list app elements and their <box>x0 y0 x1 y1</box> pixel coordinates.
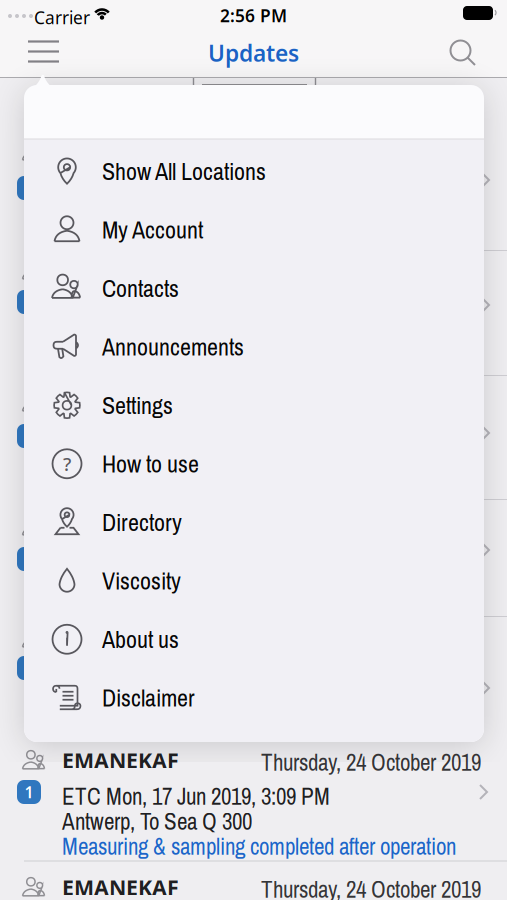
button[interactable]: Directory <box>24 493 484 551</box>
staticText: 2:56 PM <box>220 4 287 27</box>
staticText: Carrier <box>34 6 90 29</box>
staticText: EMANEKAF <box>62 873 179 900</box>
staticText: Contacts <box>102 272 179 304</box>
button[interactable]: EMANEKAF <box>0 745 507 862</box>
button[interactable]: Viscosity <box>24 551 484 610</box>
staticText: Disclaimer <box>102 682 195 714</box>
button[interactable]: About us <box>24 610 484 668</box>
staticText: Thursday, 24 October 2019 <box>261 874 481 900</box>
staticText: EMANEKAF <box>62 746 179 774</box>
staticText: My Account <box>102 214 203 246</box>
staticText: ? <box>63 451 71 476</box>
staticText: Settings <box>102 389 173 421</box>
button[interactable]: Disclaimer <box>24 668 484 727</box>
staticText: 1 <box>24 781 33 803</box>
staticText: About us <box>102 623 179 655</box>
staticText: Viscosity <box>102 565 181 597</box>
button[interactable]: My Account <box>24 200 484 259</box>
staticText: Show All Locations <box>102 155 266 187</box>
staticText: Updates <box>208 38 299 68</box>
button[interactable]: ? <box>24 434 484 493</box>
button[interactable]: Announcements <box>24 317 484 376</box>
staticText: How to use <box>102 448 199 480</box>
staticText: ETC Mon, 17 Jun 2019, 3:09 PM <box>62 781 330 812</box>
button[interactable]: EMANEKAF <box>0 862 507 900</box>
staticText: Announcements <box>102 331 244 363</box>
button[interactable]: Menu <box>27 40 60 63</box>
staticText: Directory <box>102 506 182 538</box>
button[interactable]: Settings <box>24 376 484 434</box>
button[interactable]: Show All Locations <box>24 142 484 200</box>
staticText: Antwerp, To Sea Q 300 <box>62 806 252 837</box>
staticText: Measuring & sampling completed after ope… <box>62 831 456 862</box>
staticText: Thursday, 24 October 2019 <box>261 747 481 778</box>
button[interactable]: Search <box>449 39 476 66</box>
button[interactable]: Contacts <box>24 259 484 317</box>
